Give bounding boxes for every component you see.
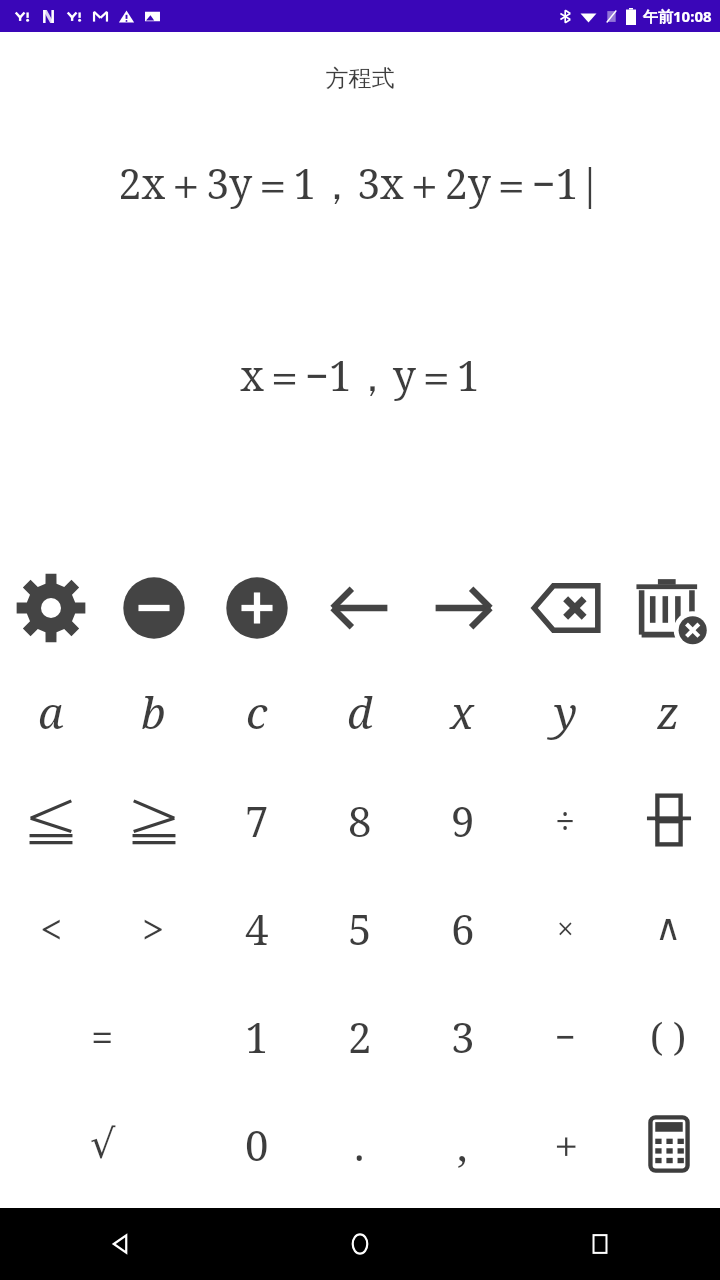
button[interactable]: b bbox=[102, 658, 205, 766]
button[interactable]: Less than or equal bbox=[0, 766, 102, 874]
button[interactable]: Increase bbox=[205, 558, 308, 658]
button[interactable]: Fraction bbox=[617, 766, 720, 874]
staticText: ÷ bbox=[555, 796, 576, 845]
button[interactable]: Backspace bbox=[514, 558, 617, 658]
staticText: 4 bbox=[245, 900, 269, 957]
button[interactable]: 7 bbox=[205, 766, 308, 874]
button[interactable]: d bbox=[308, 658, 411, 766]
staticText: 方程式 bbox=[0, 64, 720, 93]
staticText: b bbox=[141, 682, 166, 742]
button[interactable]: 8 bbox=[308, 766, 411, 874]
button[interactable]: Recents bbox=[480, 1208, 720, 1280]
staticText: . bbox=[354, 1116, 365, 1173]
button[interactable]: = bbox=[0, 982, 205, 1090]
button[interactable]: 3 bbox=[411, 982, 514, 1090]
staticText: 8 bbox=[348, 792, 372, 849]
staticText: d bbox=[347, 682, 373, 742]
staticText: √ bbox=[90, 1121, 116, 1168]
button[interactable]: < bbox=[0, 874, 102, 982]
button[interactable]: Greater than or equal bbox=[102, 766, 205, 874]
staticText: 5 bbox=[348, 900, 372, 957]
button[interactable]: Settings bbox=[0, 558, 102, 658]
button[interactable]: × bbox=[514, 874, 617, 982]
button[interactable]: ( ) bbox=[617, 982, 720, 1090]
button[interactable]: Decrease bbox=[102, 558, 205, 658]
button[interactable]: a bbox=[0, 658, 102, 766]
button[interactable]: 1 bbox=[205, 982, 308, 1090]
button[interactable]: y bbox=[514, 658, 617, 766]
button[interactable]: Move left bbox=[308, 558, 411, 658]
staticText: , bbox=[457, 1116, 468, 1173]
button[interactable]: √ bbox=[0, 1090, 205, 1198]
button[interactable]: 6 bbox=[411, 874, 514, 982]
staticText: x bbox=[450, 682, 475, 742]
staticText: ∧ bbox=[655, 907, 682, 949]
staticText: a bbox=[38, 682, 64, 742]
staticText: = bbox=[91, 1009, 114, 1063]
staticText: 6 bbox=[451, 900, 475, 957]
staticText: 1 bbox=[245, 1008, 269, 1065]
staticText: 9 bbox=[451, 792, 475, 849]
button[interactable]: 2 bbox=[308, 982, 411, 1090]
staticText: × bbox=[557, 908, 574, 949]
button[interactable]: ＋ bbox=[514, 1090, 617, 1198]
button[interactable]: Back bbox=[0, 1208, 240, 1280]
button[interactable]: 5 bbox=[308, 874, 411, 982]
button[interactable]: Home bbox=[240, 1208, 480, 1280]
staticText: 7 bbox=[245, 792, 269, 849]
staticText: − bbox=[555, 1012, 576, 1061]
button[interactable]: 0 bbox=[205, 1090, 308, 1198]
button[interactable]: Move right bbox=[411, 558, 514, 658]
staticText: 2 bbox=[348, 1008, 372, 1065]
button[interactable]: x bbox=[411, 658, 514, 766]
button[interactable]: − bbox=[514, 982, 617, 1090]
button[interactable]: , bbox=[411, 1090, 514, 1198]
button[interactable]: Clear all bbox=[617, 558, 720, 658]
staticText: 午前10:08 bbox=[643, 6, 712, 26]
staticText: > bbox=[142, 901, 165, 955]
staticText: ＋ bbox=[548, 1122, 584, 1167]
staticText: 2x＋3y＝1，3x＋2y＝−1| bbox=[0, 155, 720, 211]
button[interactable]: c bbox=[205, 658, 308, 766]
button[interactable]: 9 bbox=[411, 766, 514, 874]
button[interactable]: > bbox=[102, 874, 205, 982]
button[interactable]: ÷ bbox=[514, 766, 617, 874]
button[interactable]: Calculator bbox=[617, 1090, 720, 1198]
button[interactable]: z bbox=[617, 658, 720, 766]
button[interactable]: . bbox=[308, 1090, 411, 1198]
button[interactable]: 4 bbox=[205, 874, 308, 982]
staticText: y bbox=[554, 682, 578, 742]
staticText: c bbox=[246, 682, 268, 742]
staticText: 3 bbox=[451, 1008, 475, 1065]
staticText: z bbox=[657, 682, 680, 742]
button[interactable]: ∧ bbox=[617, 874, 720, 982]
staticText: x＝−1，y＝1 bbox=[0, 347, 720, 403]
staticText: ( ) bbox=[650, 1010, 687, 1062]
staticText: 0 bbox=[245, 1116, 269, 1173]
staticText: < bbox=[40, 901, 63, 955]
